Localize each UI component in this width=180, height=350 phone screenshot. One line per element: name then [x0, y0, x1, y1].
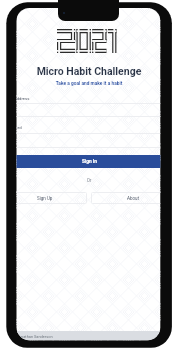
staticText: Micro Habit Challenge [3, 65, 175, 77]
staticText: © 2021 Jonathan Sanderson [3, 334, 53, 339]
button[interactable] [3, 103, 175, 117]
staticText: Or [3, 178, 175, 183]
button[interactable]: About [91, 192, 175, 204]
staticText: About [127, 196, 139, 201]
button[interactable]: Sign Up [3, 192, 87, 204]
staticText: Email address [3, 96, 30, 101]
staticText: Take a goal and make it a habit [3, 81, 175, 87]
staticText: Sign In [82, 159, 97, 165]
button[interactable]: Sign In [3, 155, 175, 168]
button[interactable] [3, 133, 175, 148]
staticText: Sign Up [37, 196, 53, 201]
staticText: Password [3, 125, 22, 130]
